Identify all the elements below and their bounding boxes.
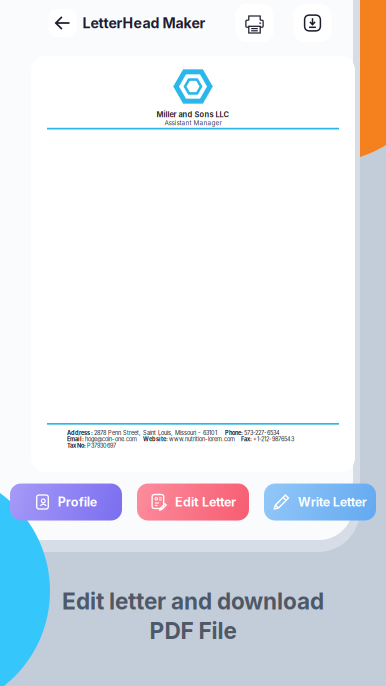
button[interactable]: Download [293, 4, 331, 42]
staticText: Profile [58, 494, 97, 510]
button[interactable]: Profile [10, 483, 122, 520]
staticText: P37930697 [87, 442, 116, 449]
staticText: Phone: [225, 430, 244, 436]
staticText: Edit Letter [175, 494, 236, 510]
staticText: Write Letter [298, 494, 367, 510]
staticText: Miller and Sons LLC [156, 110, 229, 119]
staticText: www.nutrition-lorem.com [169, 436, 241, 443]
button[interactable]: Write Letter [264, 483, 376, 520]
staticText: PDF File [149, 617, 236, 644]
button[interactable]: Back [48, 9, 76, 37]
staticText: 2878 Penn Street, Saint Louis, Missouri … [94, 430, 225, 436]
staticText: Assistant Manager [164, 119, 221, 127]
staticText: hoge@coin-one.com [85, 436, 143, 443]
staticText: 573-227-6534 [244, 430, 280, 436]
staticText: Tax No: [67, 442, 87, 449]
staticText: +1-212-9876543 [253, 436, 294, 443]
button[interactable]: Print [235, 4, 273, 42]
staticText: LetterHead Maker [82, 14, 205, 31]
staticText: Address : [67, 430, 94, 436]
button[interactable]: Edit Letter [137, 483, 249, 520]
staticText: Email: [67, 436, 85, 443]
staticText: Edit letter and download [62, 588, 324, 615]
staticText: Website: [143, 436, 169, 443]
staticText: Fax: [241, 436, 253, 443]
